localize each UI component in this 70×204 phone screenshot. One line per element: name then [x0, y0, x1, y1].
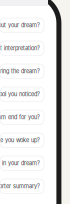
staticText: during the dream?: [0, 68, 40, 75]
button[interactable]: dream end for you?: [0, 110, 44, 124]
button[interactable]: appear in your dream?: [0, 156, 44, 170]
staticText: symbol you noticed?: [0, 91, 40, 98]
staticText: appear in your dream?: [0, 160, 40, 167]
staticText: dream end for you?: [0, 114, 40, 121]
staticText: a different interpretation?: [0, 45, 40, 52]
staticText: before you woke up?: [0, 137, 40, 144]
button[interactable]: before you woke up?: [0, 133, 44, 147]
button[interactable]: a shorter summary?: [0, 179, 44, 193]
button[interactable]: symbol you noticed?: [0, 87, 44, 101]
button[interactable]: know about your dream?: [0, 18, 44, 32]
staticText: a shorter summary?: [0, 183, 40, 190]
button[interactable]: during the dream?: [0, 64, 44, 78]
staticText: know about your dream?: [0, 22, 40, 29]
button[interactable]: a different interpretation?: [0, 41, 44, 55]
